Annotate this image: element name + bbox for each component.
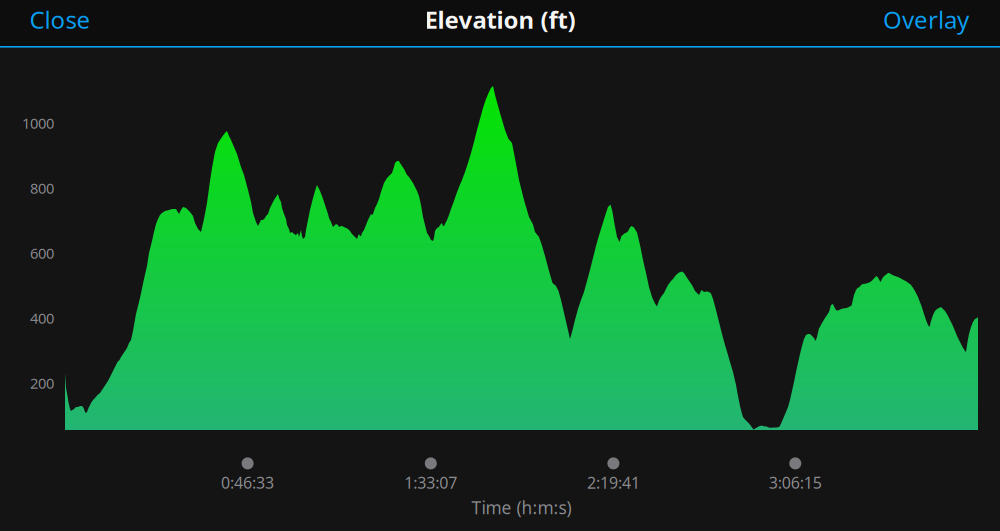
staticText: 1000 [22, 113, 54, 133]
staticText: Time (h:m:s) [471, 496, 571, 519]
staticText: 0:46:33 [221, 472, 274, 493]
staticText: Overlay [883, 4, 969, 35]
button[interactable]: Close [0, 0, 100, 42]
staticText: 2:19:41 [587, 472, 640, 493]
staticText: 3:06:15 [769, 472, 822, 493]
staticText: 600 [30, 243, 54, 263]
staticText: 400 [30, 308, 54, 328]
staticText: 800 [30, 178, 54, 198]
staticText: 1:33:07 [404, 472, 457, 493]
staticText: 200 [30, 373, 54, 393]
staticText: Elevation (ft) [424, 4, 575, 35]
button[interactable]: Overlay [873, 0, 1000, 42]
staticText: Close [29, 4, 90, 35]
